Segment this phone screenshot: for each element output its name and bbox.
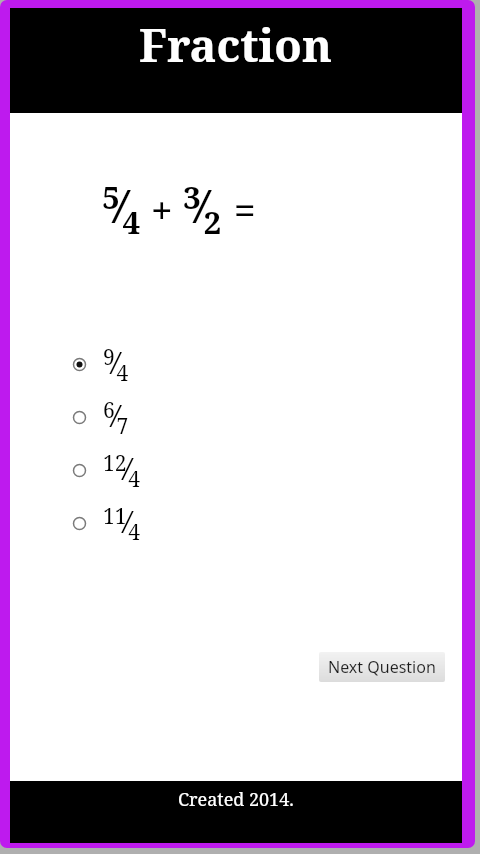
staticText: Next Question — [328, 656, 436, 678]
button[interactable]: 6⁄7 — [72, 391, 222, 444]
staticText: Fraction — [139, 14, 333, 75]
staticText: + — [151, 183, 173, 235]
button[interactable]: Next Question — [319, 652, 445, 682]
staticText: Created 2014. — [178, 787, 294, 812]
staticText: 11⁄4 — [103, 501, 141, 546]
button[interactable]: 9⁄4 — [72, 338, 222, 391]
staticText: 6⁄7 — [103, 395, 129, 440]
staticText: 5⁄4 — [102, 175, 141, 243]
staticText: = — [234, 183, 256, 235]
button[interactable]: 12⁄4 — [72, 444, 222, 497]
button[interactable]: 11⁄4 — [72, 497, 222, 550]
staticText: 9⁄4 — [103, 342, 129, 387]
staticText: 3⁄2 — [183, 175, 222, 243]
staticText: 12⁄4 — [103, 448, 141, 493]
